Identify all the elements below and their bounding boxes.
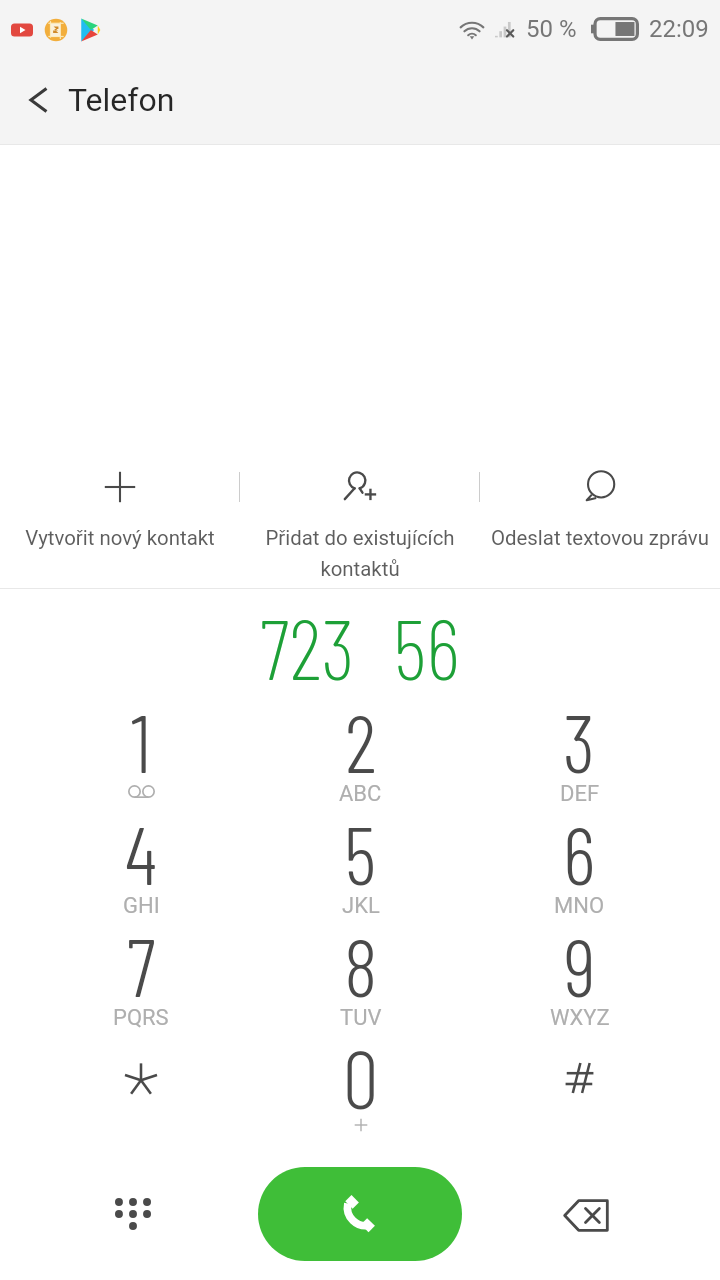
staticText: 8: [344, 917, 378, 1013]
button[interactable]: 7: [31, 914, 251, 1026]
staticText: Vytvořit nový kontakt: [0, 526, 240, 550]
button[interactable]: 0: [251, 1026, 470, 1138]
staticText: 5: [344, 805, 377, 901]
staticText: DEF: [560, 781, 600, 807]
staticText: 6: [563, 805, 596, 901]
button[interactable]: 8: [251, 914, 470, 1026]
button[interactable]: 5: [251, 802, 470, 914]
staticText: 3: [563, 693, 596, 789]
button[interactable]: 1: [31, 690, 251, 802]
staticText: Telefon: [68, 81, 175, 119]
button[interactable]: Odeslat textovou zprávu: [480, 447, 720, 588]
staticText: 9: [564, 917, 596, 1013]
button[interactable]: [470, 1026, 689, 1138]
staticText: 7: [127, 917, 156, 1013]
staticText: 4: [125, 805, 157, 901]
staticText: 2: [345, 693, 377, 789]
button[interactable]: Back: [14, 76, 62, 124]
button[interactable]: Vytvořit nový kontakt: [0, 447, 240, 588]
staticText: JKL: [342, 893, 380, 919]
staticText: 50 %: [526, 15, 577, 43]
staticText: 0: [343, 1029, 379, 1125]
button[interactable]: Hide keypad: [85, 1166, 180, 1261]
button[interactable]: Přidat do existujících kontaktů: [240, 447, 480, 588]
staticText: Přidat do existujících kontaktů: [240, 526, 480, 581]
button[interactable]: Call: [258, 1167, 462, 1261]
button[interactable]: Backspace: [538, 1168, 633, 1263]
staticText: ABC: [339, 781, 382, 807]
button[interactable]: 6: [470, 802, 689, 914]
staticText: GHI: [123, 893, 160, 919]
staticText: WXYZ: [550, 1005, 610, 1031]
staticText: PQRS: [113, 1005, 169, 1031]
staticText: Odeslat textovou zprávu: [480, 526, 720, 550]
button[interactable]: 3: [470, 690, 689, 802]
button[interactable]: [31, 1026, 251, 1138]
button[interactable]: 4: [31, 802, 251, 914]
staticText: 723: [260, 596, 355, 686]
staticText: 22:09: [649, 15, 709, 43]
staticText: 1: [131, 693, 151, 789]
staticText: MNO: [554, 893, 605, 919]
staticText: 56: [393, 596, 460, 686]
button[interactable]: 9: [470, 914, 689, 1026]
button[interactable]: 2: [251, 690, 470, 802]
staticText: TUV: [340, 1005, 382, 1031]
